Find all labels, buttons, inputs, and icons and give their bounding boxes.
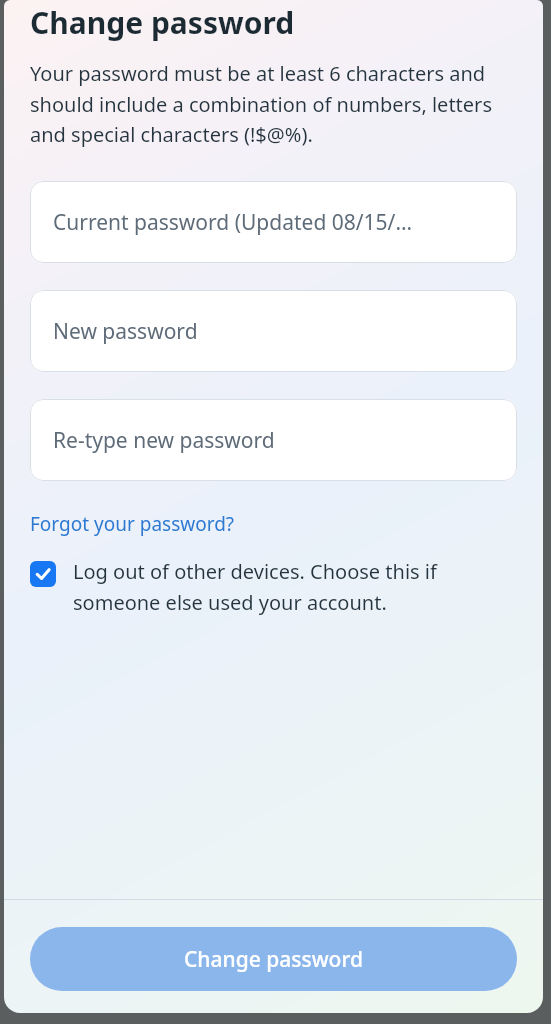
button[interactable]: Re-type new password <box>30 399 517 481</box>
button[interactable]: Change password <box>30 927 517 991</box>
staticText: Current password (Updated 08/15/… <box>53 208 413 237</box>
staticText: New password <box>53 317 198 346</box>
button[interactable]: Current password (Updated 08/15/… <box>30 181 517 263</box>
staticText: Forgot your password? <box>30 511 235 537</box>
staticText: Your password must be at least 6 charact… <box>30 60 517 147</box>
staticText: Change password <box>30 2 295 43</box>
button[interactable]: New password <box>30 290 517 372</box>
staticText: Re-type new password <box>53 426 275 455</box>
staticText: Log out of other devices. Choose this if… <box>73 559 517 616</box>
button[interactable]: Forgot your password? <box>30 509 235 539</box>
button[interactable]: Log out of other devices checkbox, check… <box>30 559 517 621</box>
staticText: Change password <box>184 945 363 974</box>
other: Log out of other devices checkbox, check… <box>30 561 56 587</box>
